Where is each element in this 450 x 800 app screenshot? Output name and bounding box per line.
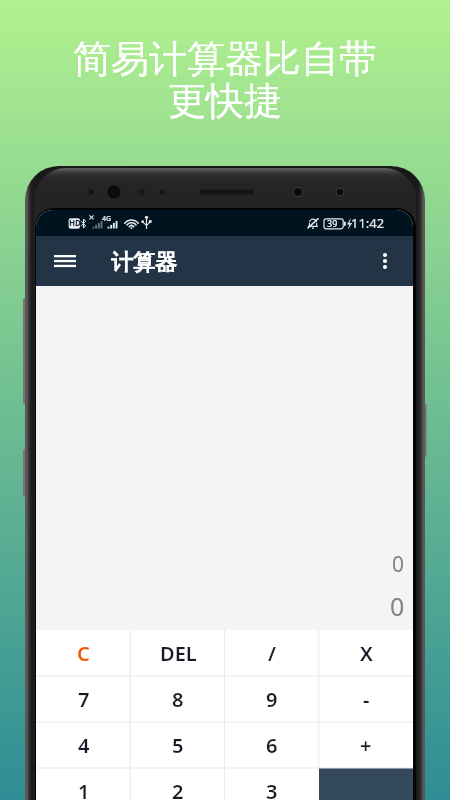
staticText: 9 <box>266 686 278 713</box>
button[interactable] <box>319 768 413 800</box>
button[interactable]: X <box>319 630 413 676</box>
button[interactable]: 8 <box>131 676 225 722</box>
button[interactable]: 4 <box>36 722 131 768</box>
staticText: X <box>360 640 373 667</box>
button[interactable]: 3 <box>225 768 319 800</box>
staticText: 5 <box>172 732 184 759</box>
button[interactable]: 9 <box>225 676 319 722</box>
button[interactable]: / <box>225 630 319 676</box>
staticText: 0 <box>390 589 405 623</box>
staticText: 2 <box>172 778 184 800</box>
staticText: 39 <box>327 217 338 229</box>
staticText: 11:42 <box>351 214 385 232</box>
button[interactable]: 1 <box>36 768 131 800</box>
button[interactable]: 6 <box>225 722 319 768</box>
button[interactable]: 2 <box>131 768 225 800</box>
staticText: 4 <box>78 732 90 759</box>
button[interactable]: + <box>319 722 413 768</box>
staticText: 4G <box>102 214 112 224</box>
button[interactable]: Menu <box>44 240 86 282</box>
staticText: C <box>77 640 90 667</box>
button[interactable]: DEL <box>131 630 225 676</box>
button[interactable]: - <box>319 676 413 722</box>
button[interactable]: C <box>36 630 131 676</box>
staticText: 7 <box>78 686 90 713</box>
staticText: 0 <box>392 550 405 579</box>
staticText: 简易计算器比自带 更快捷 <box>0 35 450 125</box>
staticText: DEL <box>160 640 197 667</box>
staticText: 计算器 <box>111 249 177 277</box>
button[interactable]: 7 <box>36 676 131 722</box>
staticText: - <box>363 686 370 713</box>
staticText: 6 <box>266 732 278 759</box>
button[interactable]: More options <box>368 244 402 278</box>
staticText: 3 <box>266 778 278 800</box>
button[interactable]: 5 <box>131 722 225 768</box>
staticText: 8 <box>172 686 184 713</box>
staticText: + <box>360 732 372 759</box>
staticText: HD <box>69 217 81 228</box>
staticText: 1 <box>78 778 90 800</box>
staticText: / <box>268 640 276 667</box>
